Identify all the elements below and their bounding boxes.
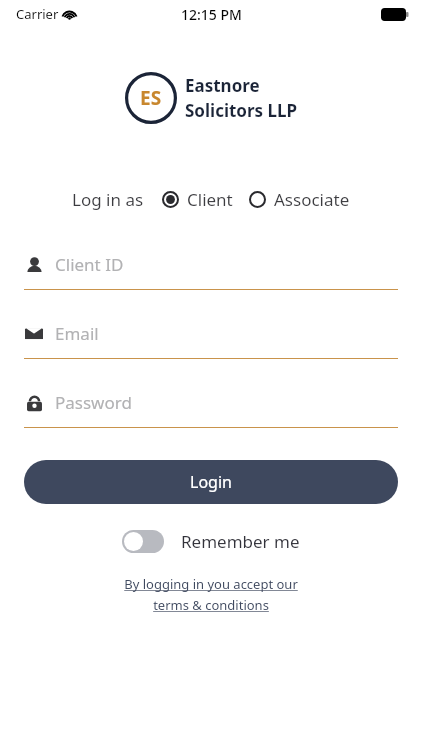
button[interactable]: Associate bbox=[249, 188, 350, 211]
staticText: 12:15 PM bbox=[181, 5, 242, 24]
staticText: Eastnore bbox=[185, 74, 260, 97]
button[interactable]: Client ID bbox=[24, 253, 398, 290]
button[interactable]: Email bbox=[24, 322, 398, 359]
staticText: Client bbox=[187, 188, 233, 211]
staticText: Email bbox=[55, 322, 99, 345]
staticText: By logging in you accept our bbox=[124, 575, 298, 593]
button[interactable]: Client bbox=[162, 188, 233, 211]
button[interactable]: Login bbox=[24, 460, 398, 504]
button[interactable]: Password bbox=[24, 391, 398, 428]
staticText: Remember me bbox=[181, 530, 300, 553]
staticText: Client ID bbox=[55, 253, 124, 276]
staticText: Login bbox=[190, 471, 232, 493]
button[interactable]: Remember me toggle bbox=[122, 530, 164, 553]
staticText: terms & conditions bbox=[153, 596, 269, 614]
staticText: Password bbox=[55, 391, 132, 414]
staticText: Carrier bbox=[16, 5, 59, 23]
staticText: Associate bbox=[274, 188, 350, 211]
staticText: ES bbox=[140, 85, 162, 111]
staticText: Solicitors LLP bbox=[185, 99, 298, 122]
button[interactable]: By logging in you accept our bbox=[0, 575, 422, 614]
staticText: Log in as bbox=[72, 188, 144, 211]
